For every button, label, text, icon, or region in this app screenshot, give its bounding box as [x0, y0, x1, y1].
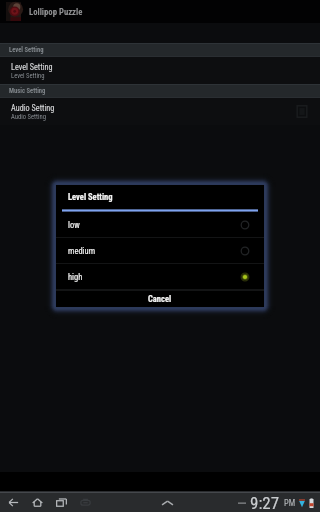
button[interactable]: medium — [56, 238, 264, 264]
staticText: Lollipop Puzzle — [29, 7, 83, 17]
button[interactable]: Audio Setting — [0, 98, 320, 125]
button[interactable]: Home — [25, 493, 49, 512]
staticText: Level Setting — [11, 62, 53, 72]
button[interactable]: Expand notifications — [158, 494, 176, 512]
staticText: Cancel — [148, 294, 172, 304]
button[interactable]: Cancel — [56, 291, 264, 307]
staticText: Level Setting — [68, 192, 113, 202]
staticText: Level Setting — [9, 46, 44, 54]
button[interactable]: Level Setting — [0, 57, 320, 84]
button[interactable]: high — [56, 264, 264, 290]
staticText: Audio Setting — [11, 103, 55, 113]
button[interactable]: low — [56, 212, 264, 238]
staticText: low — [68, 220, 80, 230]
staticText: medium — [68, 246, 96, 256]
staticText: Music Setting — [9, 87, 46, 95]
button[interactable]: Screenshot — [73, 493, 97, 512]
staticText: high — [68, 272, 83, 282]
staticText: 9:27 — [250, 493, 280, 512]
button[interactable]: Back — [1, 493, 25, 512]
staticText: PM — [284, 498, 296, 508]
staticText: Level Setting — [11, 72, 45, 80]
button[interactable]: Recent apps — [49, 493, 73, 512]
staticText: Audio Setting — [11, 113, 46, 121]
button[interactable]: 9:27 — [238, 493, 317, 512]
